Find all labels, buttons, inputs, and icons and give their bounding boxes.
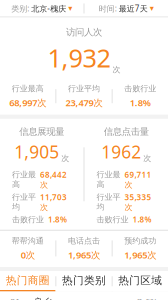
staticText: 行业平均 <box>68 84 100 93</box>
staticText: 1,965次 <box>124 249 156 261</box>
staticText: 击败行业 <box>124 84 156 93</box>
staticText: 23,479次 <box>65 96 102 109</box>
staticText: 0次 <box>21 249 35 261</box>
staticText: 行业最高 <box>12 84 44 93</box>
staticText: 信息展现量 <box>19 126 64 137</box>
staticText: 11,703次 <box>40 192 67 212</box>
staticText: 68,442次 <box>40 169 67 190</box>
button[interactable]: 类别: <box>0 0 83 17</box>
staticText: 击败行业 <box>12 215 44 224</box>
staticText: 1.8% <box>130 96 151 109</box>
button[interactable]: 时间: <box>84 0 168 17</box>
staticText: 热门类别 <box>62 274 106 287</box>
button[interactable]: 热门商圈 <box>0 271 55 291</box>
staticText: 次 <box>112 65 120 75</box>
staticText: 时间: <box>99 3 117 14</box>
staticText: 最近7天 <box>119 3 148 14</box>
staticText: 电话点击 <box>68 236 100 246</box>
staticText: ▼ <box>150 5 154 11</box>
staticText: 1962 <box>101 140 141 163</box>
button[interactable]: 热门区域 <box>113 271 168 291</box>
staticText: 35,335次 <box>124 192 151 212</box>
staticText: 帮帮沟通 <box>12 236 44 246</box>
staticText: 热门商圈 <box>6 274 50 287</box>
staticText: 信息点击量 <box>104 126 149 137</box>
staticText: 访问人次 <box>66 26 102 38</box>
staticText: 类别: <box>11 3 29 14</box>
staticText: 1.8% <box>132 214 151 225</box>
staticText: 击败行业 <box>96 215 128 224</box>
button[interactable]: 热门类别 <box>56 271 112 291</box>
staticText: 北京-槐庆 <box>31 3 66 14</box>
staticText: 68,997次 <box>9 96 46 109</box>
staticText: 3.6% <box>137 296 158 300</box>
staticText: 01: <box>10 296 23 300</box>
staticText: 69,711次 <box>124 169 151 190</box>
staticText: 1,965次 <box>68 249 100 261</box>
staticText: ▼ <box>68 5 72 11</box>
staticText: 行业最高 <box>96 170 120 189</box>
staticText: 预约成功 <box>124 236 156 246</box>
staticText: 行业平均 <box>12 192 36 212</box>
staticText: 1,932 <box>47 41 110 74</box>
staticText: 次 <box>143 153 151 163</box>
staticText: 1,905 <box>14 140 59 163</box>
staticText: 行业平均 <box>96 192 120 212</box>
button[interactable]: 01: <box>0 291 168 300</box>
staticText: 热门区域 <box>118 274 162 287</box>
staticText: 行业最高 <box>12 170 36 189</box>
staticText: 次 <box>61 153 69 163</box>
staticText: 良乡 <box>34 296 52 300</box>
staticText: 1.8% <box>48 214 67 225</box>
